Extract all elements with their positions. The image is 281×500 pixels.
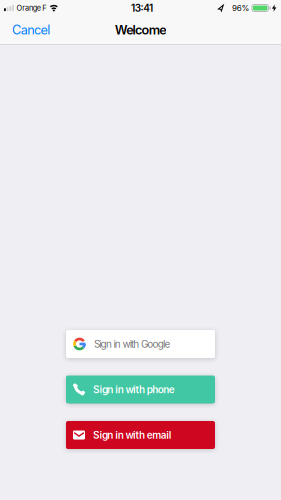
staticText: Orange F (16, 4, 46, 12)
staticText: 96% (232, 3, 249, 13)
staticText: 13:41 (131, 2, 153, 14)
button[interactable]: Cancel (12, 22, 50, 38)
staticText: Sign in with phone (93, 383, 175, 396)
button[interactable]: Sign in with email (66, 421, 215, 449)
staticText: Sign in with Google (94, 338, 170, 350)
button[interactable]: Sign in with phone (66, 375, 215, 403)
staticText: Welcome (115, 22, 166, 38)
staticText: Sign in with email (93, 429, 172, 441)
button[interactable]: Sign in with Google (66, 330, 215, 358)
staticText: Cancel (12, 22, 50, 38)
